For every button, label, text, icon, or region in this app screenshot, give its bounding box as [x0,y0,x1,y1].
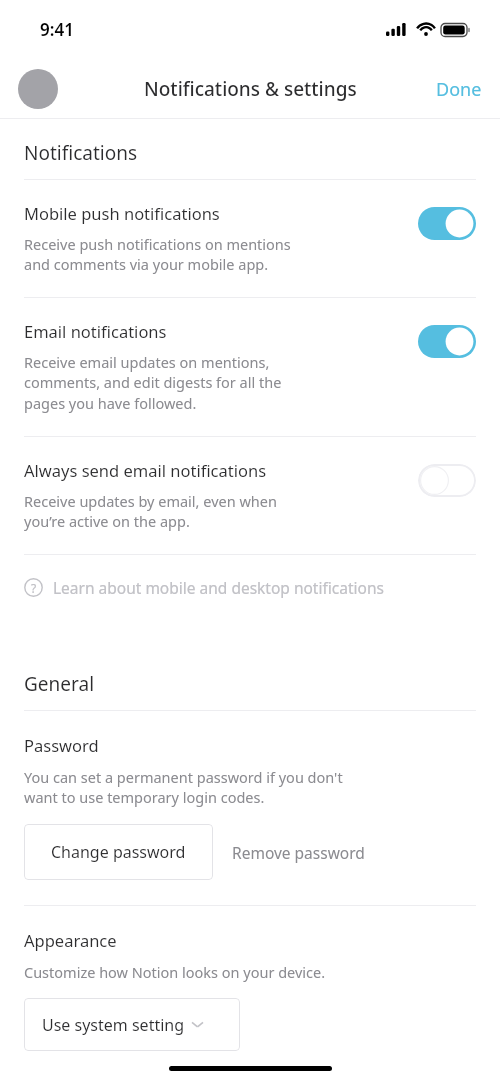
staticText: Done [436,77,482,102]
staticText: Change password [51,841,186,863]
staticText: Remove password [232,842,365,863]
button[interactable]: Done [436,77,482,102]
button[interactable]: Toggle on [418,207,476,240]
staticText: Use system setting [42,1014,185,1036]
button[interactable]: Use system setting [24,998,240,1051]
staticText: Notifications [24,140,138,166]
button[interactable]: ? [0,555,500,616]
staticText: Mobile push notifications [24,202,220,224]
button[interactable]: Mobile push notifications [0,180,500,297]
staticText: Receive push notifications on mentions a… [24,234,291,275]
staticText: Password [24,734,99,756]
staticText: You can set a permanent password if you … [24,767,343,808]
button[interactable]: Toggle off [418,464,476,497]
button[interactable]: Change password [24,824,213,880]
staticText: Always send email notifications [24,459,267,481]
staticText: Learn about mobile and desktop notificat… [53,577,384,598]
staticText: ? [31,580,37,596]
button[interactable]: Account [18,69,58,109]
button[interactable]: Email notifications [0,298,500,436]
button[interactable]: Toggle on [418,325,476,358]
staticText: Customize how Notion looks on your devic… [24,962,326,982]
button[interactable]: Always send email notifications [0,437,500,554]
staticText: Email notifications [24,320,167,342]
staticText: 9:41 [40,18,74,41]
staticText: General [24,671,95,697]
button[interactable]: Remove password [232,842,365,863]
staticText: Appearance [24,929,117,951]
staticText: Receive updates by email, even when you’… [24,491,277,532]
staticText: Notifications & settings [144,76,357,102]
staticText: Receive email updates on mentions, comme… [24,352,282,414]
